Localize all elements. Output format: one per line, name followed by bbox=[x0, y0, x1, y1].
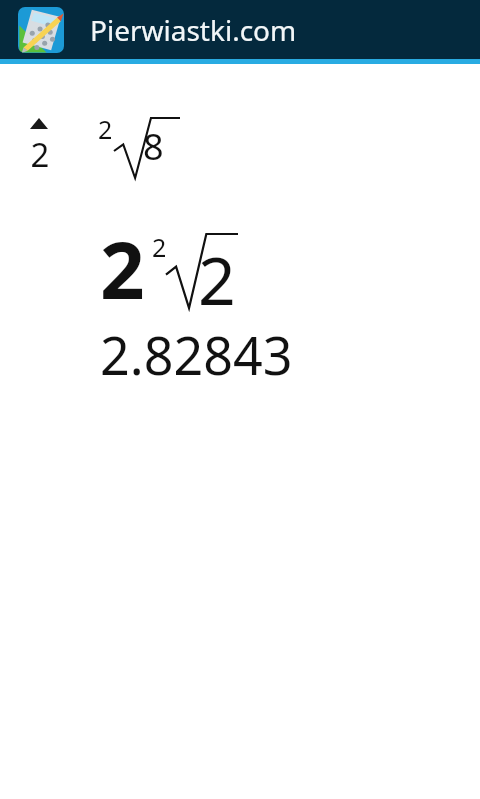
button[interactable]: Root degree selector, 2 bbox=[18, 114, 62, 186]
staticText: 2 bbox=[98, 112, 113, 146]
button[interactable]: Pierwiastki app icon bbox=[18, 7, 64, 53]
button[interactable]: 2.82843 bbox=[100, 319, 293, 390]
staticText: 8 bbox=[143, 122, 164, 171]
staticText: 2 bbox=[100, 216, 145, 322]
button[interactable]: 2 bbox=[100, 212, 280, 322]
staticText: Pierwiastki.com bbox=[90, 11, 297, 49]
staticText: 2 bbox=[198, 234, 236, 324]
staticText: 2 bbox=[18, 132, 62, 182]
button[interactable]: 2 bbox=[96, 104, 206, 194]
staticText: 2 bbox=[152, 230, 167, 264]
